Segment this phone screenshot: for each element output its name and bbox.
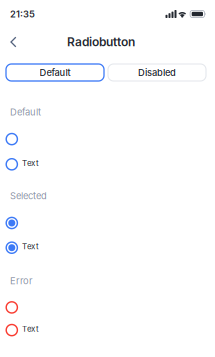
staticText: Text <box>22 158 39 168</box>
button[interactable]: Text <box>0 324 39 336</box>
staticText: Disabled <box>138 67 176 78</box>
button[interactable]: Back <box>0 29 24 55</box>
staticText: 21:35 <box>10 8 35 19</box>
staticText: Default <box>10 106 41 117</box>
button[interactable]: Default <box>6 64 104 81</box>
button[interactable]: Radio button <box>0 133 17 145</box>
staticText: Text <box>22 242 39 251</box>
button[interactable]: Text <box>0 242 39 253</box>
staticText: Error <box>10 275 33 286</box>
staticText: Radiobutton <box>67 35 135 49</box>
button[interactable]: Radio button <box>0 217 17 229</box>
staticText: Selected <box>10 190 47 201</box>
button[interactable]: Radio button <box>0 302 17 313</box>
staticText: Default <box>39 67 70 78</box>
button[interactable]: Text <box>0 159 39 170</box>
staticText: Text <box>22 324 39 333</box>
button[interactable]: Disabled <box>108 64 206 81</box>
